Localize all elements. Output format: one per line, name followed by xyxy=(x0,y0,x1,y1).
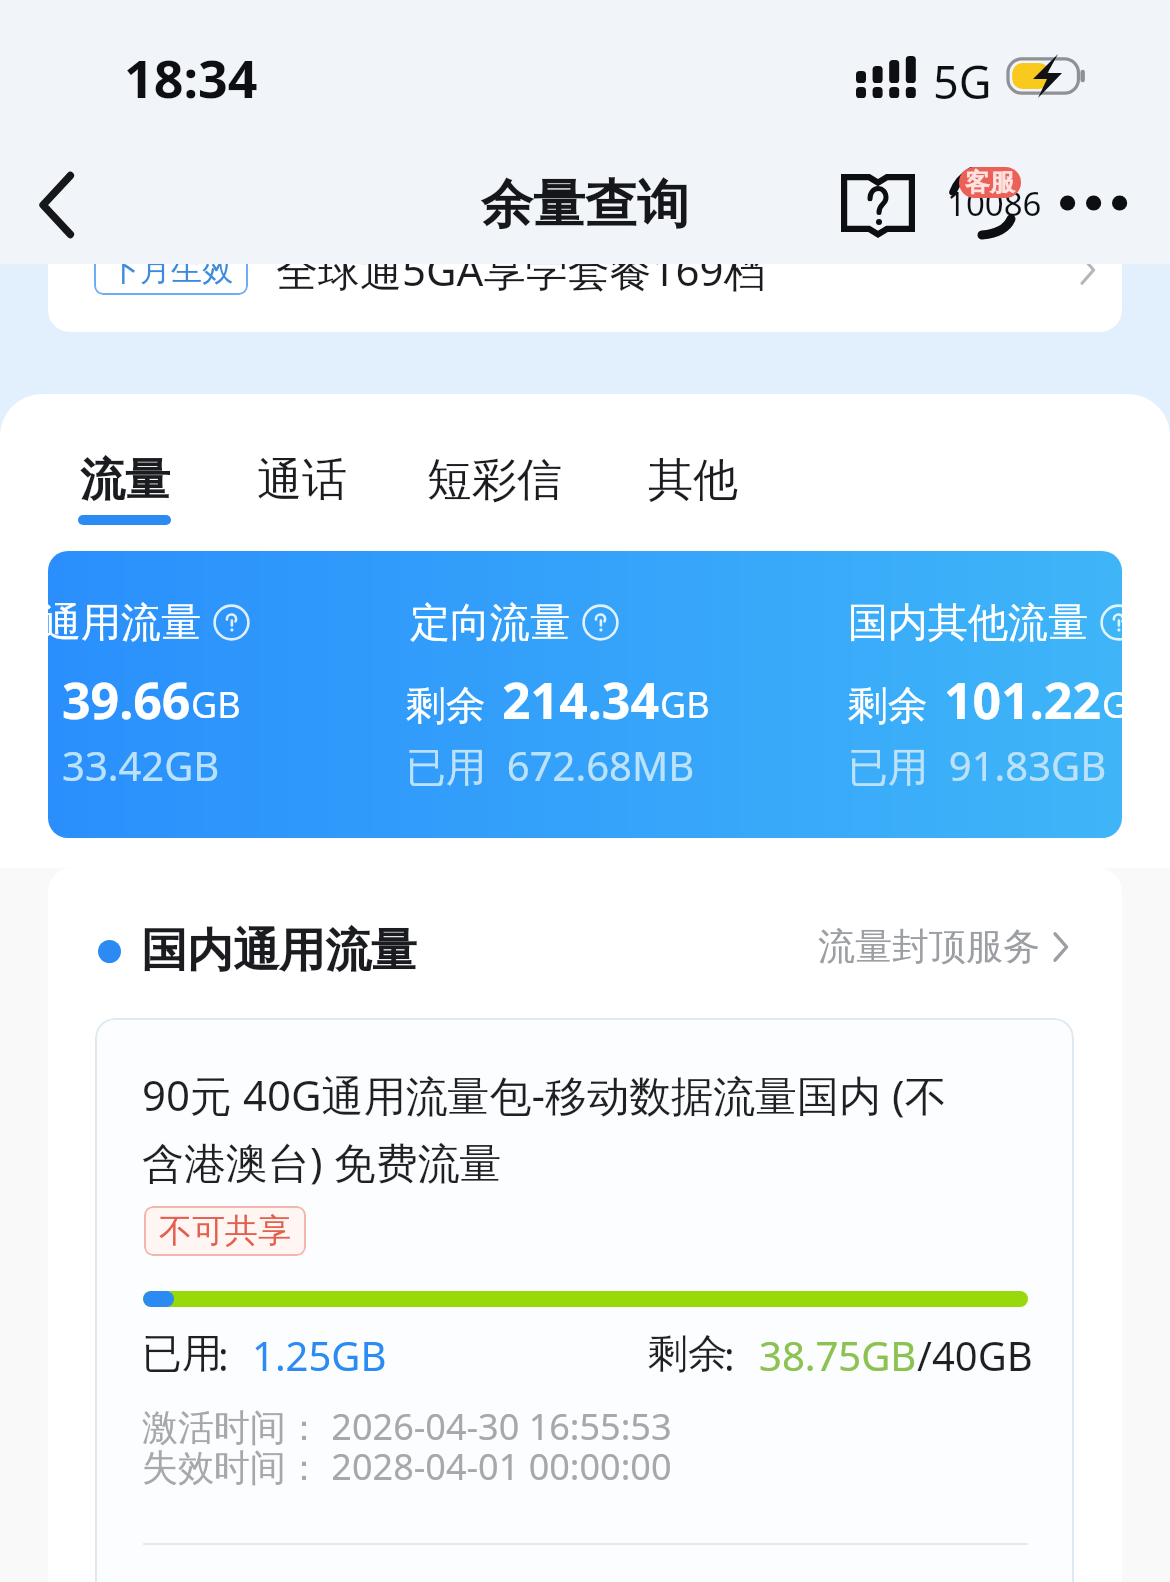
staticText: 全球通5GA享学套餐169档 xyxy=(276,241,766,298)
staticText: 定向流量 xyxy=(410,597,570,647)
staticText: : xyxy=(724,1328,735,1382)
staticText: 5G xyxy=(933,51,992,112)
staticText: 其他 xyxy=(648,452,738,509)
staticText: 38.75GB xyxy=(759,1328,917,1382)
button[interactable]: Help xyxy=(820,145,936,261)
staticText: 90元 40G通用流量包-移动数据流量国内 (不 xyxy=(142,1066,947,1123)
staticText: 剩余 xyxy=(648,1328,728,1378)
button[interactable]: Customer service 10086 xyxy=(928,145,1040,261)
button[interactable]: More options xyxy=(1046,145,1156,261)
staticText: 短彩信 xyxy=(427,452,562,509)
staticText: 流量封顶服务 xyxy=(818,923,1040,970)
button[interactable]: 流量封顶服务 xyxy=(818,923,1069,970)
button[interactable]: 其他 xyxy=(646,452,739,525)
staticText: /40GB xyxy=(917,1328,1033,1382)
staticText: 含港澳台) 免费流量 xyxy=(142,1133,502,1190)
staticText: 18:34 xyxy=(124,42,258,113)
staticText: GB xyxy=(660,680,710,729)
staticText: 214.34 xyxy=(502,666,660,734)
staticText: 39.66 xyxy=(62,666,191,734)
staticText: 已用 672.68MB xyxy=(406,738,695,793)
button[interactable]: 短彩信 xyxy=(427,452,646,525)
button[interactable]: 国内通用流量 xyxy=(98,922,417,980)
staticText: 已用 91.83GB xyxy=(848,738,1107,793)
button[interactable]: 通话 xyxy=(255,452,427,525)
staticText: GB xyxy=(1102,680,1122,729)
staticText: 已用 xyxy=(142,1328,222,1378)
staticText: 客服 xyxy=(965,167,1015,198)
staticText: 33.42GB xyxy=(62,738,220,792)
staticText: 10086 xyxy=(947,181,1021,226)
staticText: 通用流量 xyxy=(48,597,201,647)
button[interactable]: Back xyxy=(8,155,108,255)
staticText: 国内通用流量 xyxy=(141,922,417,980)
button[interactable]: 下月生效 xyxy=(48,215,1122,332)
staticText: 剩余 xyxy=(406,680,486,730)
staticText: : xyxy=(218,1328,229,1382)
staticText: 流量 xyxy=(80,452,170,509)
staticText: 激活时间： 2026-04-30 16:55:53 xyxy=(142,1402,672,1451)
staticText: 剩余 xyxy=(848,680,928,730)
staticText: 不可共享 xyxy=(159,1210,291,1252)
staticText: 1.25GB xyxy=(252,1328,387,1382)
staticText: GB xyxy=(191,680,241,729)
staticText: 通话 xyxy=(257,452,347,509)
staticText: 失效时间： 2028-04-01 00:00:00 xyxy=(142,1442,672,1491)
staticText: 国内其他流量 xyxy=(848,597,1088,647)
staticText: 下月生效 xyxy=(109,250,233,289)
button[interactable]: 流量 xyxy=(78,452,255,525)
staticText: 101.22 xyxy=(944,666,1102,734)
staticText: 余量查询 xyxy=(481,172,689,238)
